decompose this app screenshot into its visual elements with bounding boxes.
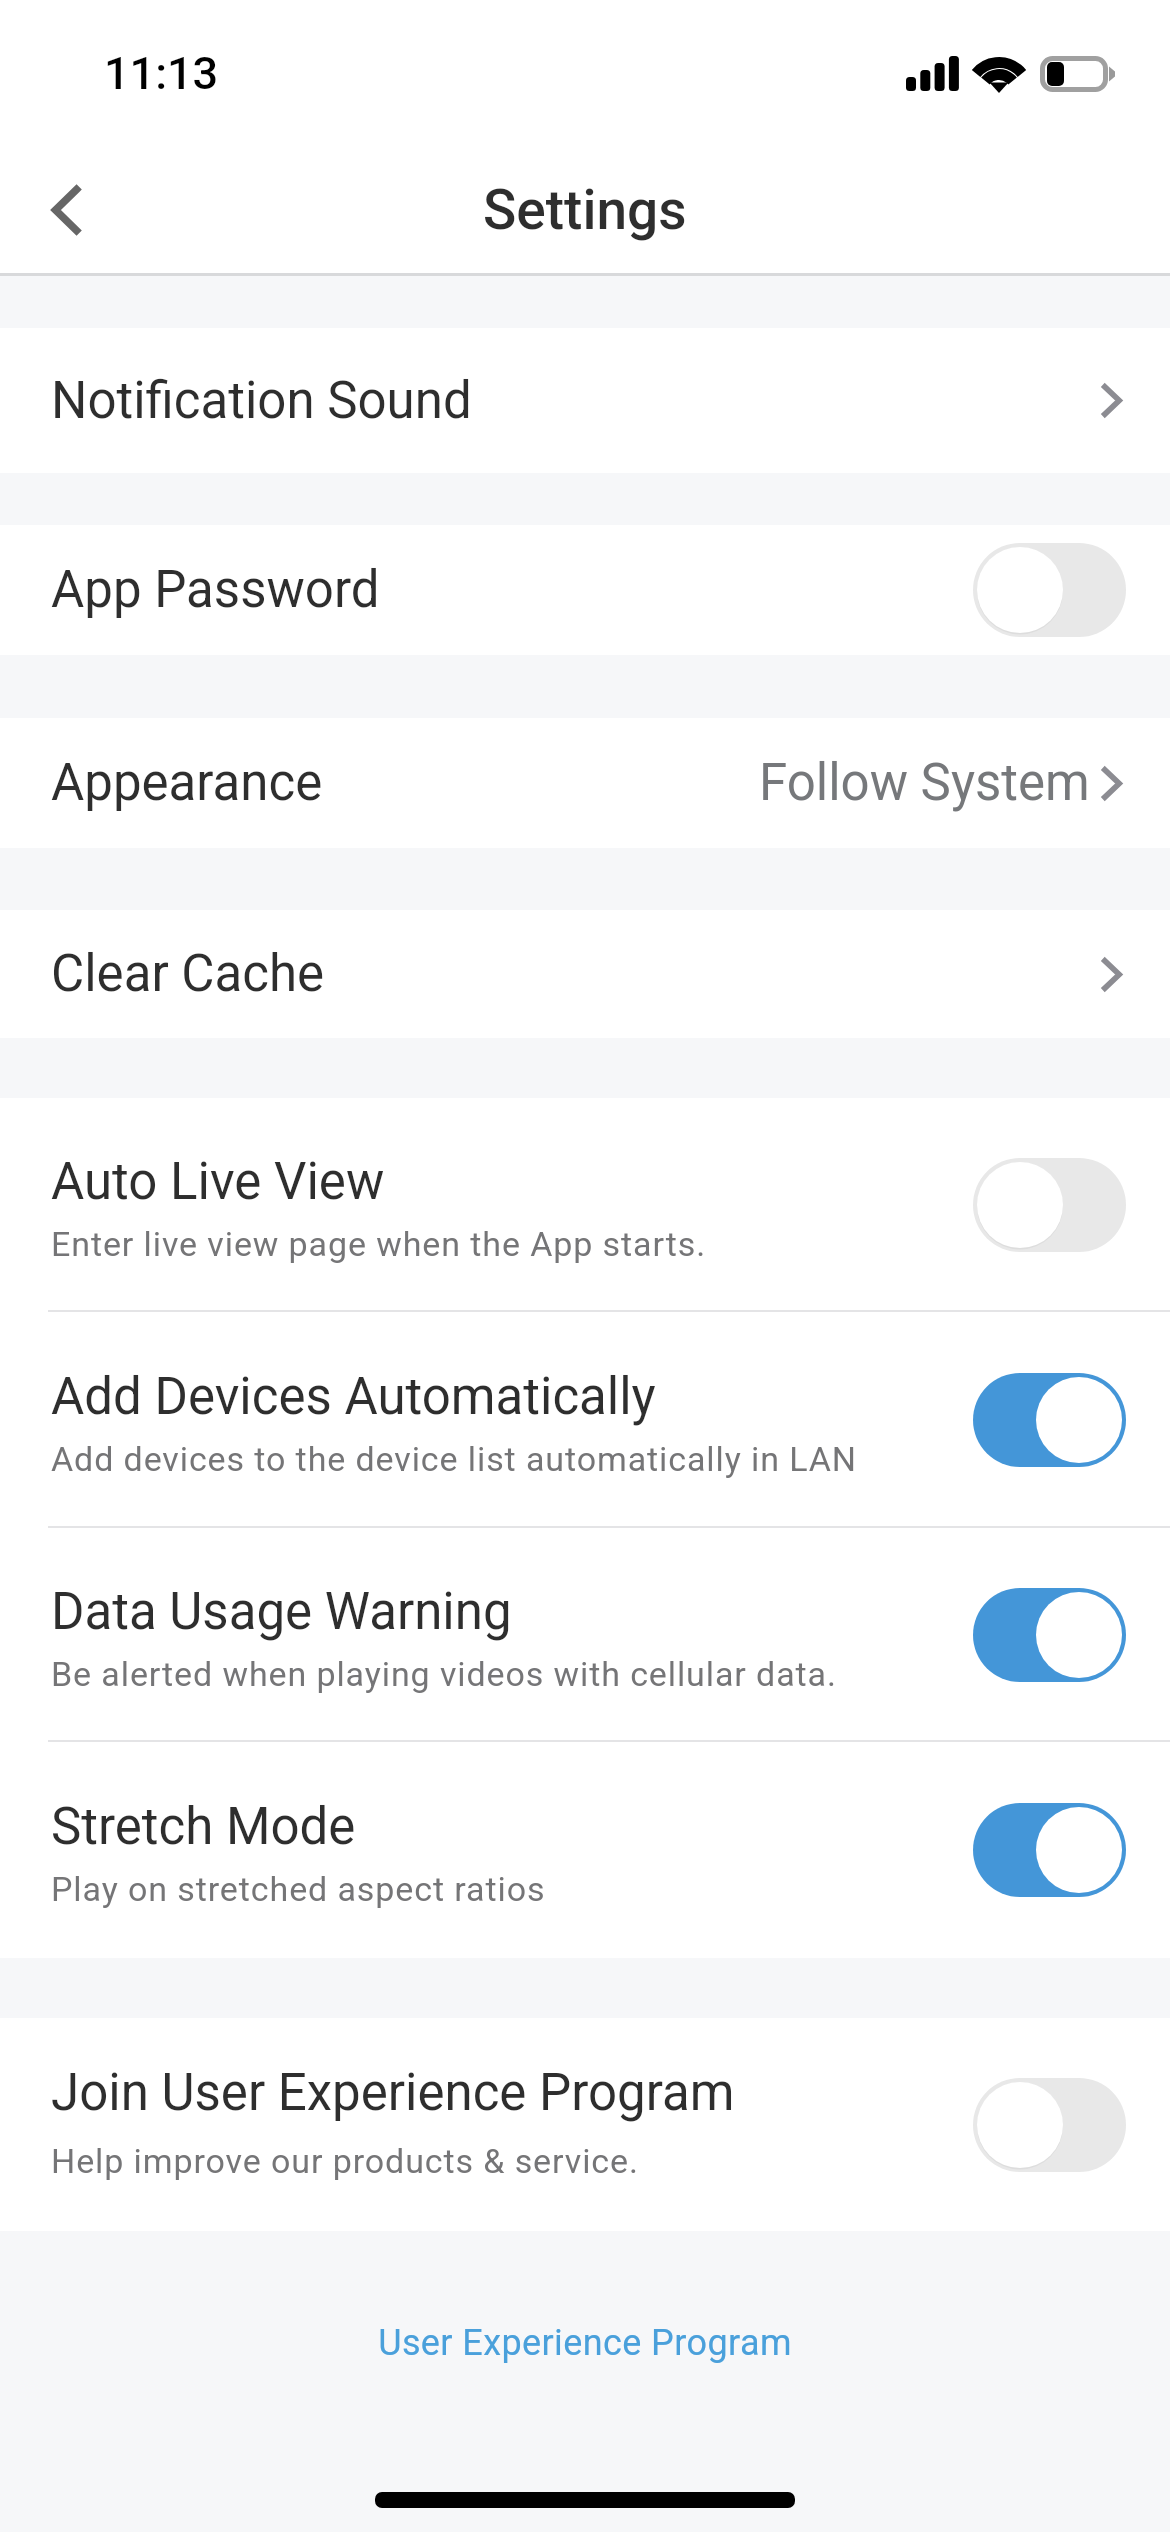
button[interactable]: Off (973, 543, 1126, 637)
staticText: Stretch Mode (51, 1797, 356, 1857)
button[interactable]: Stretch Mode (0, 1742, 1170, 1958)
button[interactable]: Auto Live View (0, 1098, 1170, 1312)
button[interactable]: Off (973, 2078, 1126, 2172)
staticText: Enter live view page when the App starts… (51, 1224, 707, 1264)
staticText: Data Usage Warning (51, 1582, 512, 1642)
staticText: Add Devices Automatically (51, 1367, 656, 1427)
staticText: Clear Cache (51, 944, 325, 1004)
button[interactable]: Clear Cache (0, 910, 1170, 1038)
staticText: Appearance (51, 753, 323, 813)
button[interactable]: Notification Sound (0, 328, 1170, 473)
button[interactable]: Appearance (0, 718, 1170, 848)
staticText: Help improve our products & service. (51, 2141, 639, 2181)
button[interactable]: User Experience Program (378, 2322, 792, 2364)
button[interactable]: On (973, 1803, 1126, 1897)
button[interactable]: Data Usage Warning (0, 1528, 1170, 1742)
staticText: Notification Sound (51, 371, 472, 431)
button[interactable]: On (973, 1373, 1126, 1467)
staticText: Add devices to the device list automatic… (51, 1439, 857, 1479)
staticText: Play on stretched aspect ratios (51, 1869, 546, 1909)
staticText: Settings (483, 178, 687, 242)
staticText: Be alerted when playing videos with cell… (51, 1654, 837, 1694)
button[interactable]: App Password (0, 525, 1170, 655)
staticText: Follow System (759, 753, 1090, 813)
button[interactable]: Off (973, 1158, 1126, 1252)
staticText: Auto Live View (51, 1152, 385, 1212)
staticText: App Password (51, 560, 380, 620)
button[interactable]: Back (14, 158, 118, 262)
button[interactable]: On (973, 1588, 1126, 1682)
button[interactable]: Join User Experience Program (0, 2018, 1170, 2231)
button[interactable]: Add Devices Automatically (0, 1312, 1170, 1528)
staticText: 11:13 (104, 47, 219, 100)
staticText: Join User Experience Program (51, 2063, 735, 2123)
